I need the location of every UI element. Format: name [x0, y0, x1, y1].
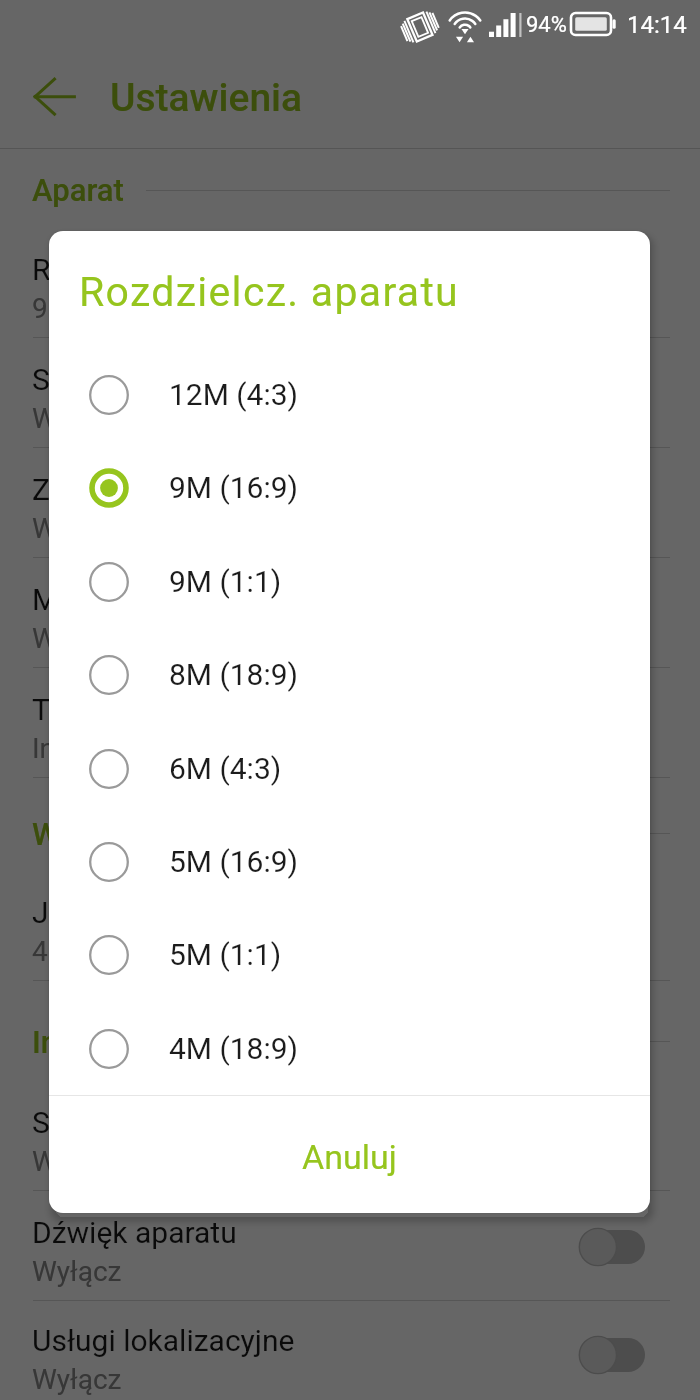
staticText: Usługi lokalizacyjne [32, 1323, 295, 1358]
button[interactable]: Toggle [579, 1226, 645, 1268]
staticText: Dźwięk aparatu [32, 1215, 237, 1250]
staticText: Inteligentne AF [32, 732, 219, 765]
staticText: 14:14 [627, 11, 687, 39]
staticText: 94% [526, 12, 567, 38]
button[interactable]: Tryb ostrości [0, 670, 700, 778]
button[interactable]: 5M (16:9) [49, 815, 650, 909]
staticText: Stabilizator obrazu [32, 1105, 282, 1140]
button[interactable]: Seria zdjęć [0, 340, 700, 448]
staticText: Wyłącz [32, 402, 122, 435]
staticText: Rozdzielcz. aparatu [79, 268, 460, 316]
staticText: Seria zdjęć [32, 362, 178, 397]
staticText: 5M (16:9) [169, 844, 299, 879]
button[interactable]: Toggle [579, 1334, 645, 1376]
button[interactable]: Znacznik GPS [0, 450, 700, 558]
button[interactable]: Back [22, 65, 88, 131]
staticText: 12M (4:3) [169, 377, 299, 412]
button[interactable]: 12M (4:3) [49, 348, 650, 442]
button[interactable]: 4M (18:9) [49, 1002, 650, 1096]
button[interactable]: Migawka dotykowa [0, 560, 700, 668]
staticText: Aparat [32, 172, 124, 208]
staticText: Znacznik GPS [32, 472, 218, 507]
staticText: Migawka dotykowa [32, 582, 290, 617]
staticText: Wyłącz [32, 1145, 122, 1178]
button[interactable]: Anuluj [49, 1096, 650, 1213]
button[interactable]: Rozdzielcz. aparatu [0, 230, 700, 338]
staticText: Anuluj [302, 1137, 397, 1177]
staticText: Tryb ostrości [32, 692, 206, 727]
staticText: Ustawienia [110, 75, 303, 121]
staticText: Wideo [32, 816, 119, 852]
button[interactable]: 9M (1:1) [49, 535, 650, 629]
button[interactable]: Usługi lokalizacyjne [0, 1301, 700, 1400]
staticText: 5M (1:1) [169, 937, 282, 972]
staticText: 9M (1:1) [169, 564, 282, 599]
button[interactable]: Dźwięk aparatu [0, 1193, 700, 1301]
staticText: Wyłącz [32, 512, 122, 545]
staticText: Wyłącz [32, 1363, 122, 1396]
staticText: 9M (16:9) [169, 470, 299, 505]
button[interactable]: Jakość wideo [0, 873, 700, 981]
button[interactable]: 6M (4:3) [49, 722, 650, 816]
staticText: Wyłącz [32, 622, 122, 655]
staticText: Jakość wideo [32, 895, 216, 930]
staticText: Inne [32, 1024, 92, 1060]
staticText: 9M (16:9) [32, 292, 153, 325]
staticText: 4M (18:9) [169, 1031, 299, 1066]
staticText: 4K (16:9) [32, 935, 146, 968]
button[interactable]: Stabilizator obrazu [0, 1083, 700, 1191]
button[interactable]: 5M (1:1) [49, 908, 650, 1002]
staticText: Wyłącz [32, 1255, 122, 1288]
staticText: 6M (4:3) [169, 751, 282, 786]
button[interactable]: 9M (16:9) [49, 441, 650, 535]
staticText: 8M (18:9) [169, 657, 299, 692]
staticText: Rozdzielcz. aparatu [32, 252, 292, 287]
button[interactable]: 8M (18:9) [49, 628, 650, 722]
